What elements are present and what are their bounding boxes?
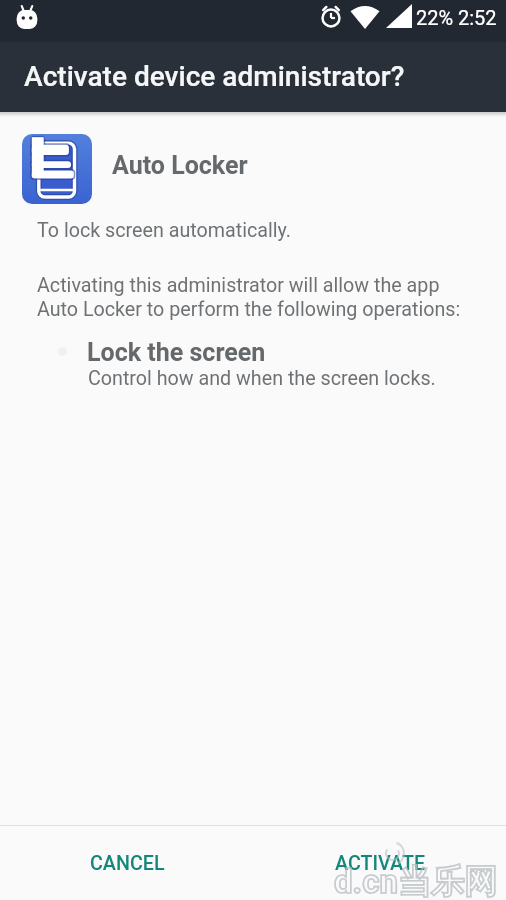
staticText: 2:52 — [458, 6, 497, 29]
staticText: CANCEL — [90, 852, 165, 875]
button[interactable]: CANCEL — [57, 828, 197, 898]
staticText: Activate device administrator? — [24, 60, 405, 93]
staticText: Control how and when the screen locks. — [88, 367, 436, 390]
staticText: ACTIVATE — [335, 852, 426, 875]
button[interactable]: ACTIVATE — [310, 828, 451, 898]
staticText: Activating this administrator will allow… — [37, 274, 461, 320]
staticText: Lock the screen — [87, 338, 266, 367]
staticText: To lock screen automatically. — [37, 219, 291, 242]
staticText: Auto Locker — [112, 151, 248, 180]
staticText: 22% — [416, 6, 454, 29]
staticText: d.cn当乐网 — [334, 861, 497, 900]
